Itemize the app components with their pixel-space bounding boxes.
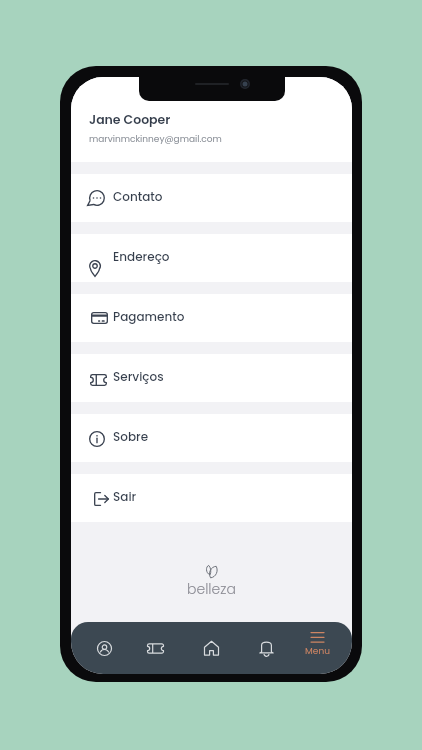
button[interactable]: Sair <box>71 474 352 522</box>
button[interactable]: Endereço <box>71 234 352 282</box>
staticText: Pagamento <box>113 308 185 325</box>
staticText: Sobre <box>113 428 149 445</box>
staticText: belleza <box>187 579 236 599</box>
staticText: Menu <box>305 645 330 658</box>
button[interactable]: Contato <box>71 174 352 222</box>
button[interactable]: Menu <box>292 622 342 674</box>
button[interactable]: Home <box>186 622 236 674</box>
staticText: Endereço <box>113 248 170 265</box>
button[interactable]: Pagamento <box>71 294 352 342</box>
button[interactable]: Notifications <box>241 622 291 674</box>
button[interactable]: Services <box>130 622 180 674</box>
staticText: marvinmckinney@gmail.com <box>89 133 222 146</box>
staticText: Jane Cooper <box>89 111 171 128</box>
staticText: Contato <box>113 188 163 205</box>
button[interactable]: Serviços <box>71 354 352 402</box>
staticText: Serviços <box>113 368 164 385</box>
button[interactable]: Sobre <box>71 414 352 462</box>
staticText: Sair <box>113 488 137 505</box>
button[interactable]: Profile <box>79 622 129 674</box>
